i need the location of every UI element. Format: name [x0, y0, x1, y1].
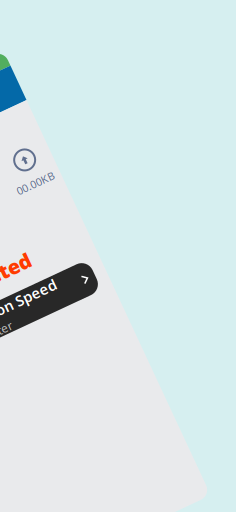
staticText: Connection Speed — [0, 245, 50, 264]
button[interactable]: Connection Speed — [0, 246, 89, 280]
